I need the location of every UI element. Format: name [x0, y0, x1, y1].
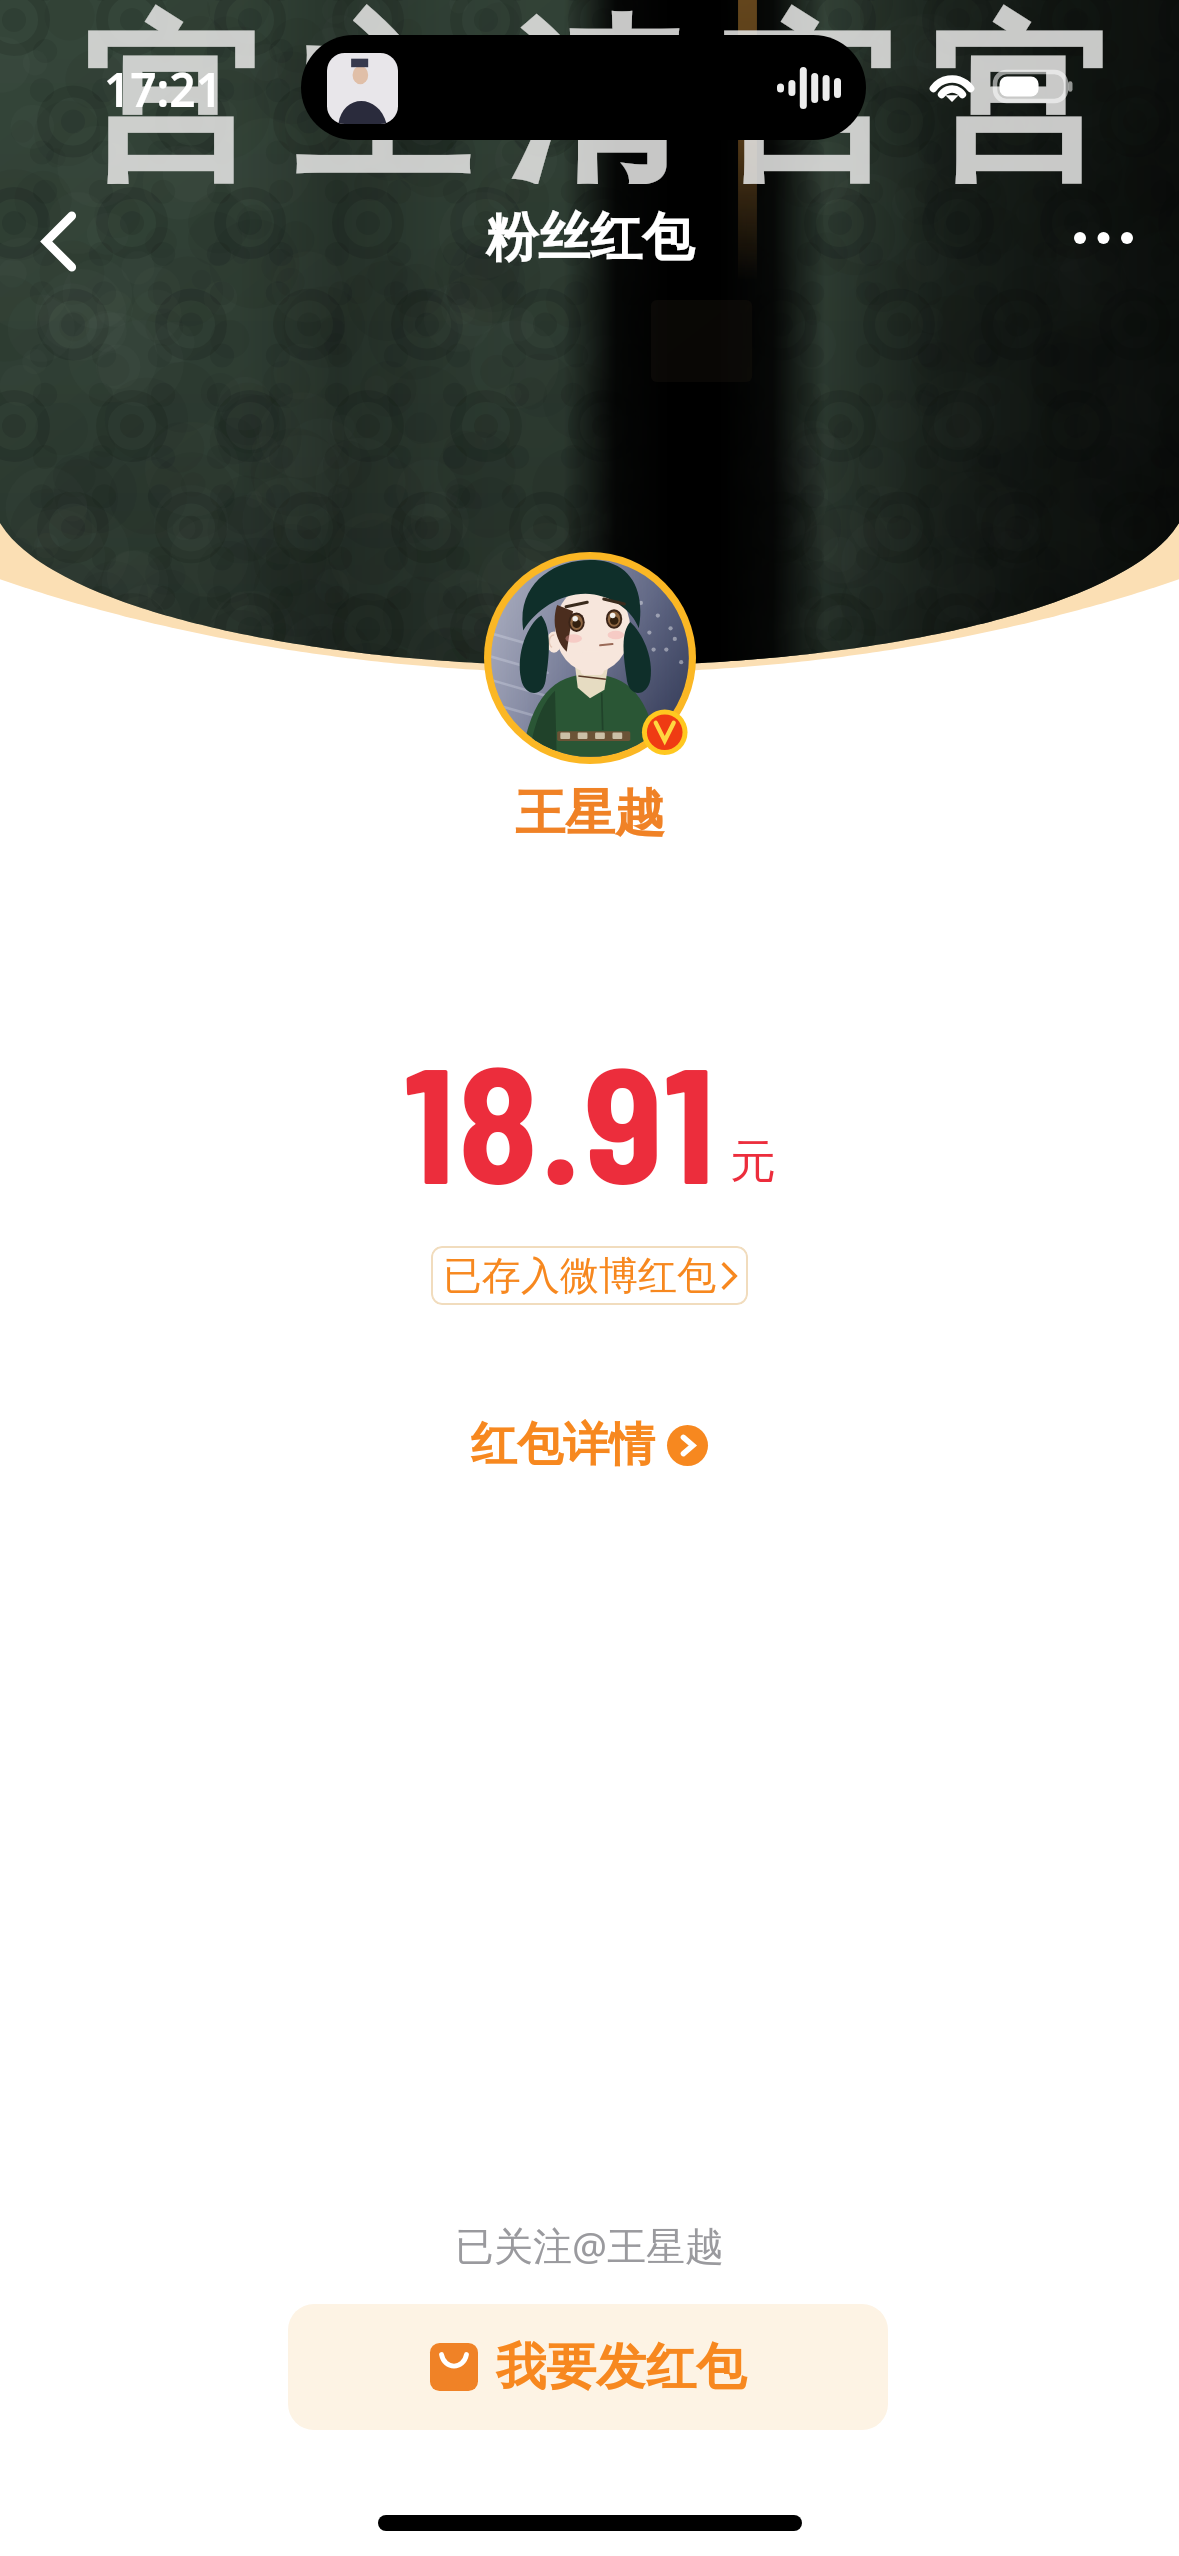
staticText: 已关注@王星越 [455, 2218, 725, 2271]
button[interactable]: Back [4, 186, 114, 296]
staticText: 我要发红包 [496, 2336, 746, 2399]
button[interactable]: 我要发红包 [288, 2304, 888, 2430]
staticText: 元 [730, 1133, 776, 1191]
staticText: 红包详情 [471, 1416, 655, 1474]
button[interactable]: More options [1048, 183, 1158, 293]
staticText: 粉丝红包 [486, 205, 694, 271]
staticText: 已存入微博红包 [443, 1251, 716, 1300]
staticText: 18.91 [403, 1021, 718, 1217]
staticText: 王星越 [515, 782, 665, 845]
staticText: 17:21 [104, 58, 222, 121]
staticText: 宫主清宫宫 [64, 0, 1124, 184]
button[interactable]: 红包详情 [461, 1408, 718, 1482]
button[interactable]: 已存入微博红包 [431, 1246, 748, 1305]
